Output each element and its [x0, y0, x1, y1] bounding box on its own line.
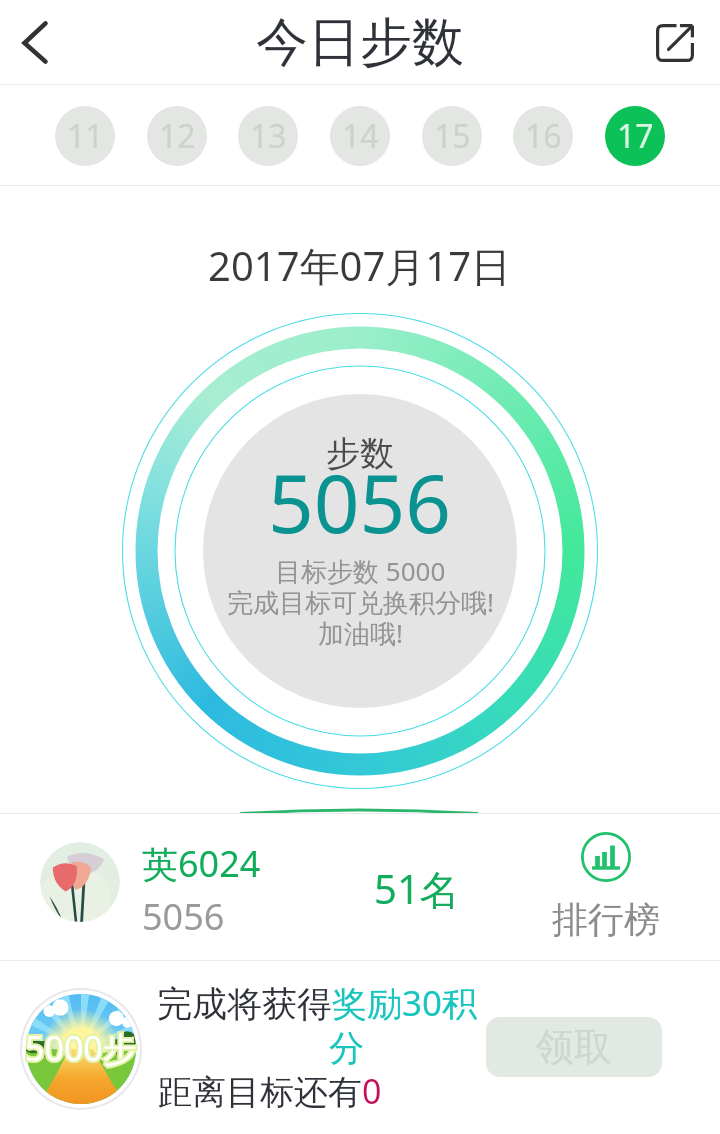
button[interactable]: Share — [642, 10, 708, 76]
staticText: 步数 — [326, 432, 394, 475]
staticText: 5056 — [142, 892, 225, 941]
staticText: 分 — [329, 1026, 364, 1070]
button[interactable]: 14 — [330, 106, 390, 166]
staticText: 加油哦! — [318, 615, 403, 651]
staticText: 领取 — [536, 1023, 612, 1071]
button[interactable]: 16 — [513, 106, 573, 166]
staticText: 15 — [434, 114, 471, 158]
staticText: 51名 — [374, 861, 460, 916]
staticText: 距离目标还有0 — [158, 1068, 382, 1114]
staticText: 英6024 — [142, 839, 261, 888]
staticText: 5000步 — [25, 1025, 137, 1071]
staticText: 完成将获得奖励30积 — [157, 979, 478, 1027]
button[interactable]: 排行榜 — [547, 828, 665, 942]
staticText: 2017年07月17日 — [208, 238, 512, 293]
button[interactable]: Back — [2, 0, 70, 84]
staticText: 5000步 — [25, 1025, 137, 1071]
staticText: 13 — [250, 114, 287, 158]
staticText: 11 — [67, 114, 104, 158]
staticText: 排行榜 — [552, 897, 660, 942]
button[interactable]: 12 — [147, 106, 207, 166]
staticText: 完成目标可兑换积分哦! — [227, 584, 494, 620]
staticText: 今日步数 — [256, 10, 464, 76]
button[interactable]: 英6024 — [0, 814, 720, 960]
staticText: 14 — [342, 114, 379, 158]
staticText: 目标步数 5000 — [275, 553, 446, 589]
button[interactable]: 11 — [55, 106, 115, 166]
button[interactable]: 13 — [238, 106, 298, 166]
button[interactable]: 15 — [422, 106, 482, 166]
staticText: 5056 — [268, 447, 452, 556]
staticText: 12 — [159, 114, 196, 158]
staticText: 16 — [525, 114, 562, 158]
button[interactable]: 领取 — [486, 1017, 662, 1077]
button[interactable]: 17 — [605, 106, 665, 166]
staticText: 17 — [617, 114, 654, 158]
